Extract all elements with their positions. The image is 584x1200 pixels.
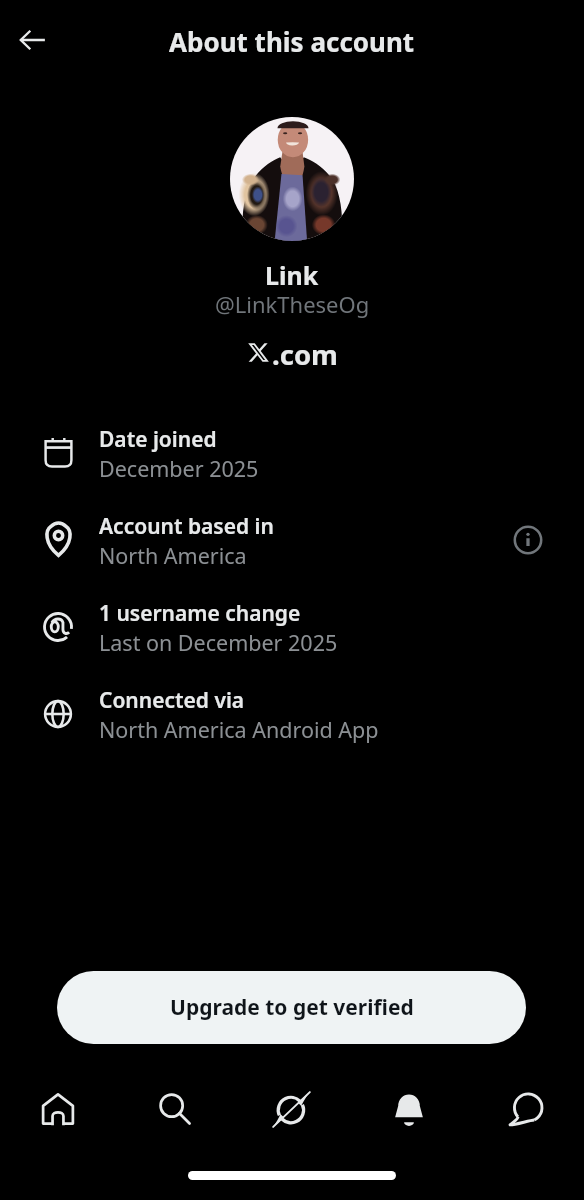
staticText: Last on December 2025 bbox=[99, 628, 338, 657]
button[interactable]: Date joined bbox=[0, 409, 584, 496]
staticText: .com bbox=[272, 336, 338, 370]
button[interactable]: Home bbox=[0, 1081, 116, 1137]
staticText: December 2025 bbox=[99, 454, 259, 483]
button[interactable]: Grok bbox=[233, 1081, 350, 1137]
staticText: 1 username change bbox=[99, 599, 301, 628]
staticText: Link bbox=[265, 258, 319, 292]
staticText: Upgrade to get verified bbox=[170, 993, 414, 1022]
button[interactable]: Back bbox=[8, 16, 56, 64]
button[interactable]: Upgrade to get verified bbox=[57, 971, 526, 1044]
button[interactable]: More info bbox=[506, 518, 550, 562]
staticText: Date joined bbox=[99, 425, 217, 454]
button[interactable]: Account based in bbox=[0, 496, 584, 583]
button[interactable]: Messages bbox=[467, 1081, 584, 1137]
staticText: North America Android App bbox=[99, 715, 379, 744]
button[interactable]: Connected via bbox=[0, 670, 584, 757]
button[interactable]: Search bbox=[116, 1081, 233, 1137]
staticText: @LinkTheseOg bbox=[215, 289, 370, 319]
staticText: Connected via bbox=[99, 686, 245, 715]
staticText: North America bbox=[99, 541, 247, 570]
staticText: About this account bbox=[169, 24, 415, 59]
button[interactable]: 1 username change bbox=[0, 583, 584, 670]
staticText: Account based in bbox=[99, 512, 274, 541]
button[interactable]: Notifications bbox=[350, 1081, 467, 1137]
